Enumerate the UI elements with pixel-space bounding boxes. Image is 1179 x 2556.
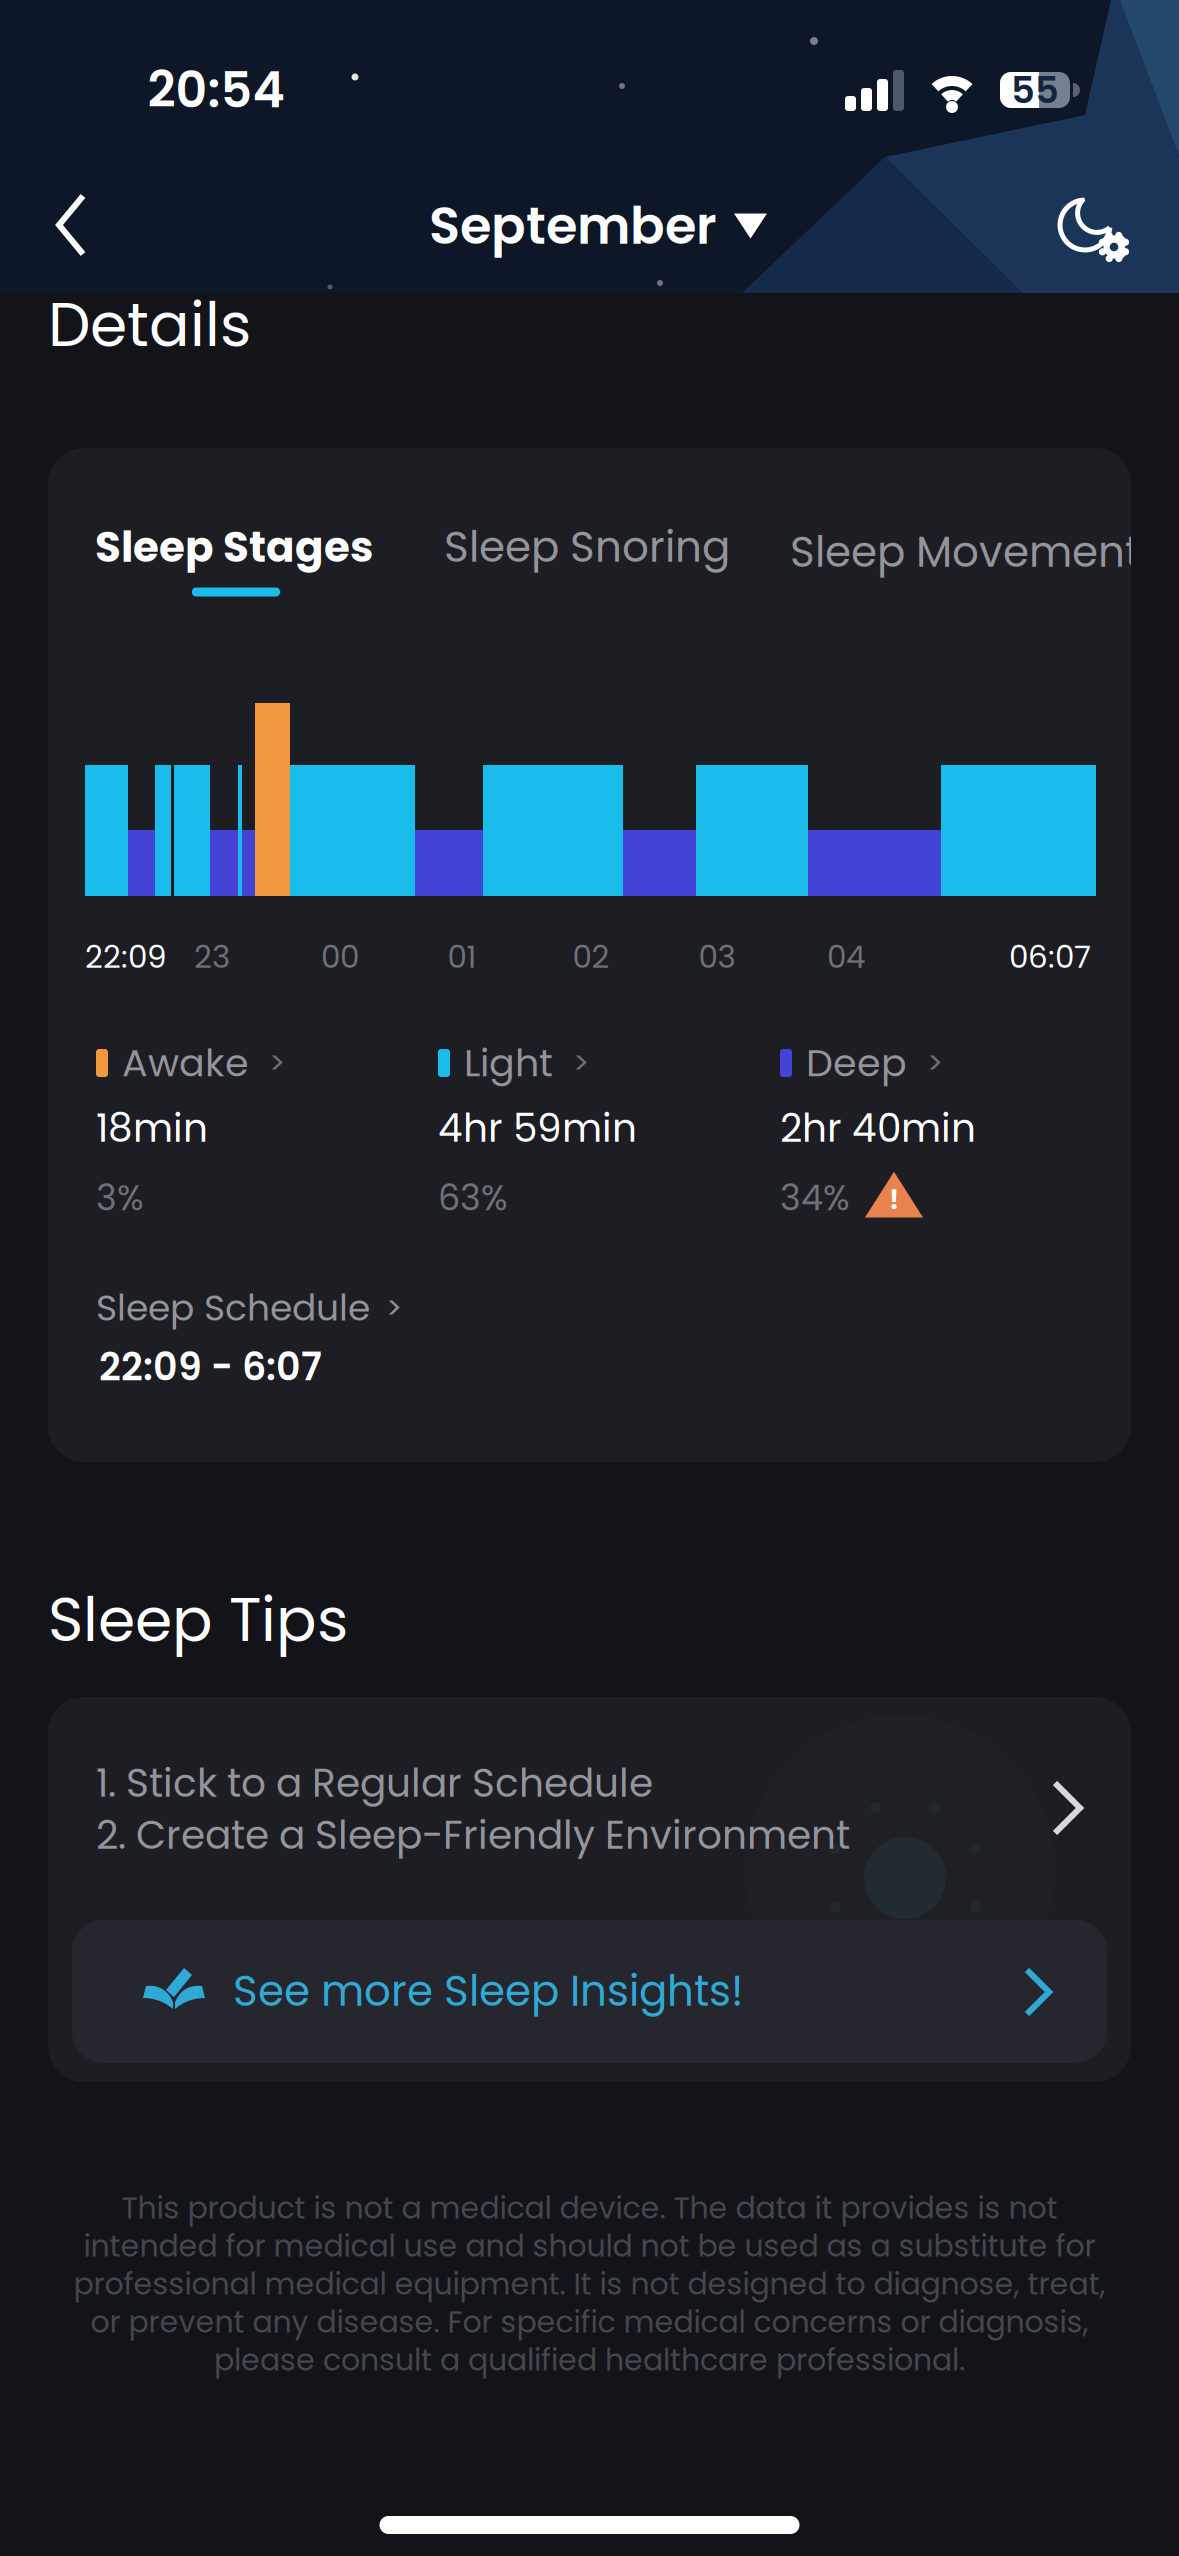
staticText: 55 — [1011, 64, 1059, 116]
staticText: 1. Stick to a Regular Schedule — [96, 1756, 653, 1810]
button[interactable]: Deep — [780, 1028, 1100, 1098]
staticText: Deep — [806, 1036, 907, 1090]
staticText: This product is not a medical device. Th… — [121, 2187, 1057, 2229]
staticText: 06:07 — [1009, 935, 1091, 979]
button[interactable] — [1043, 177, 1143, 277]
staticText: Sleep Tips — [48, 1578, 348, 1662]
staticText: 2hr 40min — [780, 1101, 976, 1155]
staticText: 01 — [447, 935, 476, 979]
staticText: 20:54 — [147, 56, 284, 124]
button[interactable]: See more Sleep Insights! — [72, 1920, 1107, 2063]
button[interactable]: Light — [438, 1028, 758, 1098]
staticText: Sleep Stages — [95, 518, 373, 576]
staticText: > — [573, 1042, 589, 1084]
staticText: 00 — [321, 935, 359, 979]
staticText: 3% — [96, 1173, 144, 1222]
button[interactable]: Sleep Movement — [790, 497, 1131, 607]
staticText: ! — [889, 1182, 899, 1218]
staticText: > — [927, 1042, 943, 1084]
staticText: 04 — [827, 935, 865, 979]
button[interactable]: 1. Stick to a Regular Schedule — [48, 1697, 1131, 1920]
staticText: 34% — [780, 1173, 850, 1222]
staticText: 22:09 — [85, 935, 167, 979]
staticText: Awake — [122, 1036, 249, 1090]
staticText: or prevent any disease. For specific med… — [90, 2301, 1088, 2343]
staticText: > — [269, 1042, 285, 1084]
staticText: professional medical equipment. It is no… — [73, 2263, 1105, 2305]
button[interactable]: Sleep Stages — [84, 497, 384, 607]
staticText: Sleep Snoring — [444, 518, 730, 576]
button[interactable]: Sleep Schedule — [96, 1276, 536, 1340]
staticText: Details — [48, 283, 251, 367]
staticText: Light — [464, 1036, 553, 1090]
staticText: please consult a qualified healthcare pr… — [214, 2339, 965, 2381]
staticText: 22:09 - 6:07 — [99, 1340, 322, 1394]
button[interactable]: September — [429, 181, 767, 271]
staticText: > — [386, 1287, 402, 1329]
staticText: Sleep Movement — [790, 523, 1140, 581]
staticText: See more Sleep Insights! — [233, 1962, 744, 2020]
staticText: 2. Create a Sleep-Friendly Environment — [96, 1808, 850, 1862]
staticText: Sleep Schedule — [96, 1283, 370, 1333]
button[interactable] — [26, 180, 116, 270]
staticText: 18min — [96, 1101, 208, 1155]
staticText: 63% — [438, 1173, 508, 1222]
button[interactable]: Awake — [96, 1028, 416, 1098]
staticText: intended for medical use and should not … — [83, 2225, 1095, 2267]
staticText: 4hr 59min — [438, 1101, 637, 1155]
staticText: 02 — [572, 935, 609, 979]
button[interactable]: Sleep Snoring — [437, 497, 737, 607]
staticText: 23 — [194, 935, 230, 979]
staticText: 03 — [698, 935, 735, 979]
staticText: September — [429, 190, 717, 262]
